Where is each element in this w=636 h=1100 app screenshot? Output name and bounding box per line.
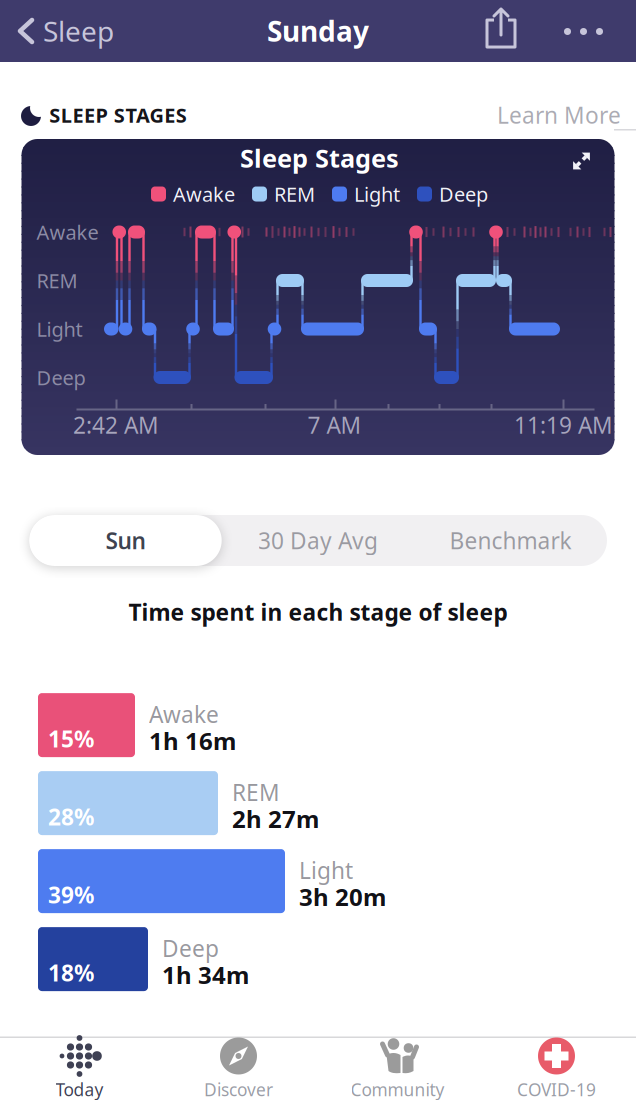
staticText: SLEEP STAGES bbox=[49, 102, 187, 128]
button[interactable]: Discover bbox=[159, 1038, 318, 1100]
staticText: Today bbox=[55, 1078, 103, 1100]
button[interactable]: Learn More bbox=[489, 102, 629, 128]
staticText: Learn More bbox=[497, 100, 621, 130]
staticText: Light bbox=[354, 181, 400, 207]
staticText: 7 AM bbox=[307, 410, 361, 440]
staticText: 2:42 AM bbox=[73, 410, 159, 440]
staticText: 30 Day Avg bbox=[258, 525, 378, 555]
staticText: COVID-19 bbox=[517, 1078, 596, 1100]
staticText: Sun bbox=[105, 525, 145, 555]
staticText: Awake bbox=[149, 699, 219, 729]
staticText: 11:19 AM bbox=[514, 410, 613, 440]
staticText: 1h 16m bbox=[149, 725, 236, 757]
staticText: 39% bbox=[48, 880, 94, 910]
staticText: Deep bbox=[439, 181, 488, 207]
staticText: 28% bbox=[48, 802, 94, 832]
staticText: Benchmark bbox=[450, 525, 572, 555]
button[interactable]: Community bbox=[318, 1038, 477, 1100]
staticText: 15% bbox=[48, 724, 94, 754]
staticText: Discover bbox=[204, 1078, 273, 1100]
staticText: Awake bbox=[36, 219, 98, 245]
button[interactable] bbox=[479, 7, 523, 57]
staticText: REM bbox=[36, 267, 77, 294]
staticText: Deep bbox=[162, 933, 219, 963]
button[interactable] bbox=[554, 16, 614, 46]
staticText: Sleep Stages bbox=[240, 141, 399, 175]
staticText: REM bbox=[274, 181, 315, 207]
staticText: Light bbox=[299, 855, 353, 885]
button[interactable]: 30 Day Avg bbox=[222, 515, 414, 566]
staticText: 3h 20m bbox=[299, 881, 386, 913]
button[interactable]: Benchmark bbox=[414, 515, 607, 566]
staticText: 2h 27m bbox=[232, 803, 319, 835]
staticText: Time spent in each stage of sleep bbox=[128, 597, 507, 627]
staticText: Light bbox=[36, 316, 82, 342]
button[interactable]: COVID-19 bbox=[477, 1038, 636, 1100]
staticText: Community bbox=[350, 1078, 444, 1100]
button[interactable]: Today bbox=[0, 1038, 159, 1100]
staticText: 1h 34m bbox=[162, 959, 249, 991]
button[interactable] bbox=[570, 150, 592, 172]
staticText: Sunday bbox=[267, 12, 369, 50]
staticText: 18% bbox=[48, 958, 94, 988]
staticText: Sleep bbox=[43, 12, 114, 50]
staticText: REM bbox=[232, 777, 280, 807]
staticText: Awake bbox=[173, 181, 235, 207]
button[interactable]: Sun bbox=[29, 515, 222, 566]
staticText: Deep bbox=[36, 364, 85, 391]
button[interactable]: Sleep bbox=[14, 9, 116, 53]
